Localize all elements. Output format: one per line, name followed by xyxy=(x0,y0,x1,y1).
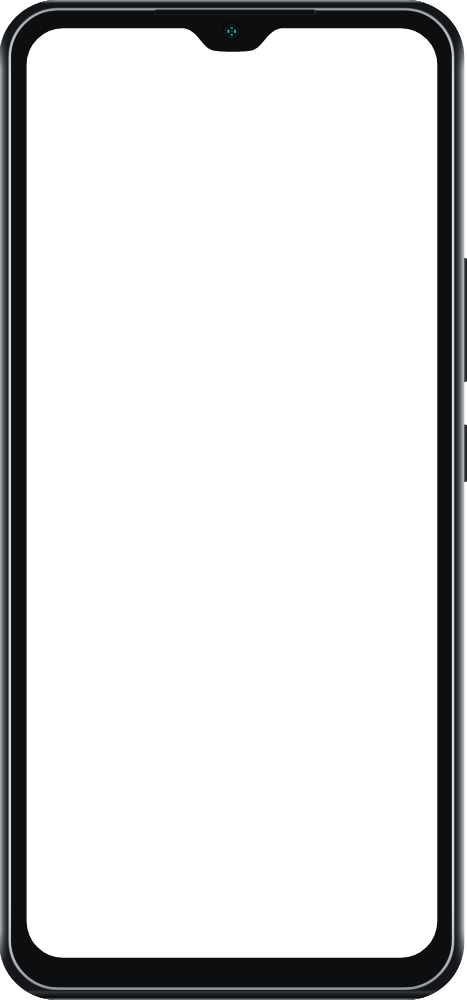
button[interactable]: Volume xyxy=(456,258,467,382)
button[interactable]: Power xyxy=(456,424,467,482)
